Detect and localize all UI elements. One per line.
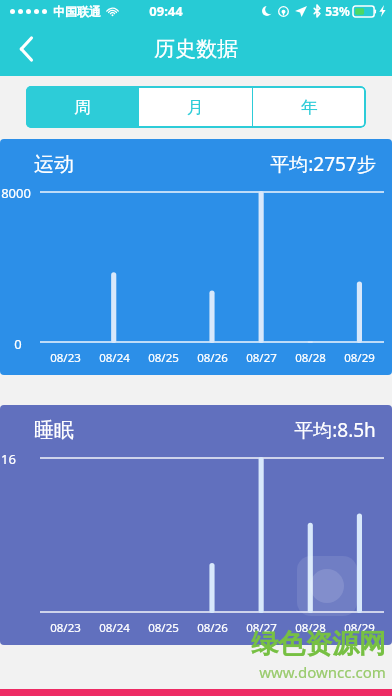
staticText: 08/28: [295, 350, 326, 366]
staticText: 08/25: [148, 350, 179, 366]
staticText: 绿色资源网: [251, 627, 386, 661]
staticText: 睡眠: [34, 418, 74, 443]
button[interactable]: 周: [26, 86, 138, 128]
staticText: 08/24: [99, 620, 130, 636]
staticText: 08/23: [50, 620, 81, 636]
staticText: 平均:8.5h: [294, 417, 376, 443]
staticText: 53%: [325, 3, 350, 19]
staticText: 08/26: [197, 350, 228, 366]
staticText: 周: [74, 97, 91, 118]
staticText: 中国联通: [53, 4, 101, 19]
staticText: 08/27: [246, 620, 277, 636]
staticText: 09:44: [149, 2, 183, 20]
staticText: 08/26: [197, 620, 228, 636]
staticText: 08/28: [295, 620, 326, 636]
staticText: 8000: [1, 184, 31, 202]
button[interactable]: 月: [139, 86, 252, 128]
staticText: 08/27: [246, 350, 277, 366]
staticText: 08/29: [344, 620, 375, 636]
button[interactable]: Back: [0, 23, 52, 75]
staticText: 运动: [34, 152, 74, 177]
button[interactable]: 睡眠: [0, 405, 392, 645]
staticText: 16: [1, 450, 16, 468]
staticText: 平均:2757步: [270, 151, 376, 177]
staticText: 月: [187, 97, 204, 118]
button[interactable]: 年: [253, 86, 366, 128]
staticText: 08/25: [148, 620, 179, 636]
staticText: 08/23: [50, 350, 81, 366]
button[interactable]: 运动: [0, 139, 392, 375]
staticText: 08/29: [344, 350, 375, 366]
staticText: www.downcc.com: [259, 662, 386, 682]
staticText: 历史数据: [154, 36, 238, 62]
staticText: 0: [14, 335, 22, 353]
staticText: 年: [301, 97, 318, 118]
staticText: 08/24: [99, 350, 130, 366]
